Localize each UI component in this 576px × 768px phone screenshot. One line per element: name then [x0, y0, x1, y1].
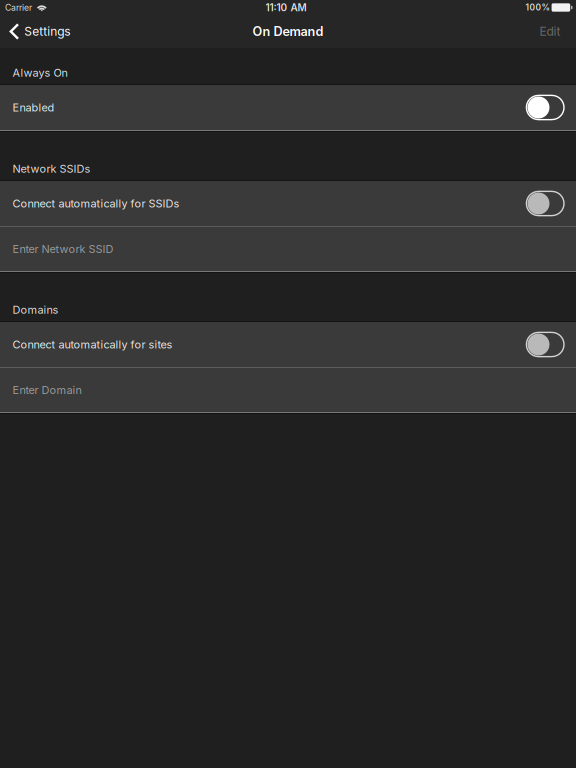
staticText: Enabled: [12, 101, 54, 114]
button[interactable]: Connect automatically for sites: [0, 322, 576, 367]
button[interactable]: Connect automatically for SSIDs: [0, 181, 576, 226]
staticText: Enter Network SSID: [12, 242, 113, 256]
staticText: Domains: [12, 303, 58, 316]
button[interactable]: Enabled: [0, 85, 576, 130]
staticText: On Demand: [252, 24, 323, 39]
staticText: Connect automatically for sites: [12, 338, 172, 351]
staticText: 11:10 AM: [266, 1, 307, 14]
button[interactable]: Enter Network SSID: [0, 227, 576, 271]
button[interactable]: Enter Domain: [0, 368, 576, 412]
staticText: Connect automatically for SSIDs: [12, 197, 179, 210]
staticText: Network SSIDs: [12, 162, 90, 175]
staticText: 100%: [526, 2, 550, 13]
staticText: Always On: [12, 66, 67, 79]
button[interactable]: Edit: [529, 15, 576, 48]
staticText: Edit: [539, 24, 560, 39]
staticText: Settings: [24, 24, 70, 39]
staticText: Enter Domain: [12, 383, 81, 397]
button[interactable]: Settings: [0, 15, 78, 48]
staticText: Carrier: [5, 2, 32, 13]
